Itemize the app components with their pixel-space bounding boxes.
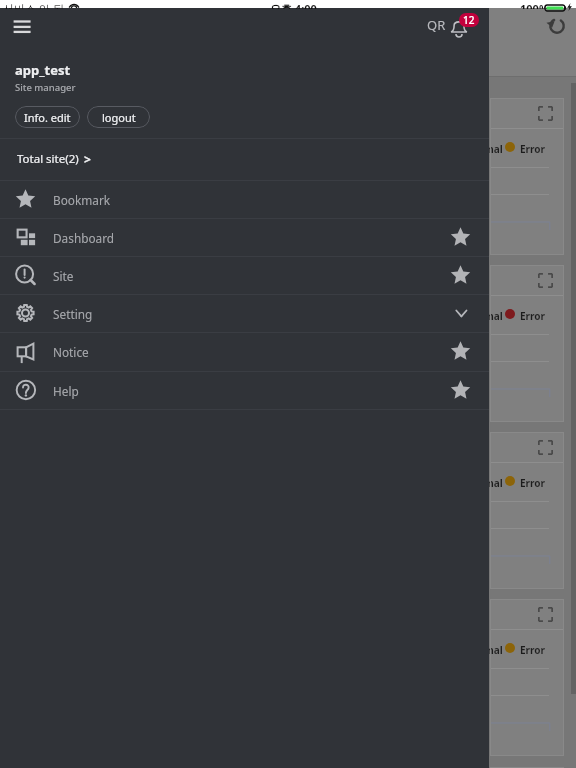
- button[interactable]: Dashboard: [0, 218, 489, 256]
- staticText: Info. edit: [24, 110, 71, 125]
- button[interactable]: logout: [87, 106, 150, 128]
- staticText: Setting: [53, 306, 93, 322]
- button[interactable]: Info. edit: [15, 106, 80, 128]
- button[interactable]: Total site(2): [0, 139, 489, 179]
- button[interactable]: Site: [0, 256, 489, 294]
- staticText: Site: [53, 268, 74, 284]
- staticText: >: [84, 151, 91, 167]
- staticText: 오후 4:00: [270, 1, 317, 9]
- button[interactable]: Help: [0, 371, 489, 409]
- staticText: Bookmark: [53, 192, 111, 208]
- staticText: mal: [484, 309, 503, 323]
- staticText: 12: [463, 13, 475, 27]
- staticText: app_test: [15, 61, 71, 79]
- staticText: Error: [520, 142, 546, 156]
- staticText: logout: [102, 110, 136, 125]
- staticText: mal: [484, 142, 503, 156]
- staticText: Dashboard: [53, 230, 115, 246]
- staticText: 100%: [520, 1, 549, 9]
- button[interactable]: QR: [422, 14, 451, 36]
- button[interactable]: Open navigation menu: [6, 8, 38, 40]
- staticText: Site manager: [15, 81, 76, 94]
- staticText: Error: [520, 309, 546, 323]
- button[interactable]: mal: [490, 98, 564, 255]
- button[interactable]: Bookmark: [0, 180, 489, 218]
- button[interactable]: Setting: [0, 294, 489, 332]
- staticText: QR: [427, 16, 446, 34]
- button[interactable]: Notifications: [450, 19, 468, 35]
- button[interactable]: mal: [490, 265, 564, 422]
- staticText: Help: [53, 383, 79, 399]
- staticText: Notice: [53, 344, 89, 360]
- staticText: Error: [520, 476, 546, 490]
- staticText: mal: [484, 476, 503, 490]
- staticText: 서비스 안 됨: [3, 1, 64, 9]
- button[interactable]: 12 notifications: [459, 13, 479, 27]
- button[interactable]: mal: [490, 599, 564, 756]
- button[interactable]: Notice: [0, 332, 489, 370]
- staticText: Error: [520, 643, 546, 657]
- staticText: Total site(2): [17, 151, 79, 167]
- staticText: mal: [484, 643, 503, 657]
- button[interactable]: Refresh: [545, 14, 569, 38]
- button[interactable]: mal: [490, 432, 564, 589]
